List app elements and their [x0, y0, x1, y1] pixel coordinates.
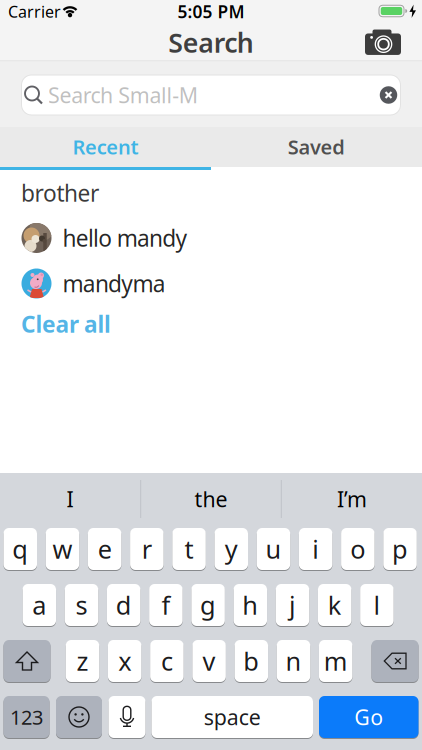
staticText: e: [98, 532, 112, 566]
button[interactable]: d: [107, 583, 140, 627]
button[interactable]: u: [257, 527, 290, 571]
button[interactable]: mandyma: [21, 265, 401, 301]
button[interactable]: k: [318, 583, 351, 627]
staticText: space: [204, 703, 261, 731]
staticText: u: [265, 532, 281, 566]
button[interactable]: [380, 86, 397, 104]
button[interactable]: hello mandy: [21, 220, 401, 256]
button[interactable]: y: [214, 527, 248, 571]
button[interactable]: the: [146, 477, 276, 521]
button[interactable]: space: [151, 695, 313, 739]
button[interactable]: Recent: [0, 126, 211, 167]
staticText: j: [289, 588, 296, 622]
staticText: Saved: [288, 133, 345, 160]
staticText: m: [324, 644, 348, 678]
button[interactable]: f: [149, 583, 183, 627]
button[interactable]: Go: [319, 695, 418, 739]
staticText: s: [75, 588, 87, 622]
button[interactable]: a: [22, 583, 56, 627]
button[interactable]: Search Small-M: [21, 75, 400, 115]
staticText: d: [116, 588, 132, 622]
staticText: o: [350, 532, 365, 566]
staticText: n: [285, 644, 301, 678]
button[interactable]: p: [383, 527, 417, 571]
staticText: g: [200, 588, 216, 622]
staticText: r: [142, 532, 152, 566]
staticText: z: [76, 644, 88, 678]
staticText: q: [12, 532, 28, 566]
button[interactable]: [108, 695, 145, 739]
staticText: c: [161, 644, 173, 678]
staticText: t: [185, 532, 194, 566]
staticText: Recent: [72, 133, 138, 160]
button[interactable]: c: [150, 639, 184, 683]
staticText: I’m: [337, 485, 367, 513]
button[interactable]: [362, 25, 406, 59]
button[interactable]: e: [88, 527, 121, 571]
staticText: v: [203, 644, 216, 678]
button[interactable]: b: [235, 639, 268, 683]
staticText: b: [243, 644, 259, 678]
button[interactable]: q: [3, 527, 37, 571]
staticText: I: [66, 485, 73, 513]
staticText: i: [312, 532, 319, 566]
button[interactable]: x: [108, 639, 141, 683]
button[interactable]: t: [172, 527, 206, 571]
staticText: k: [328, 588, 342, 622]
button[interactable]: l: [360, 583, 394, 627]
staticText: mandyma: [62, 268, 166, 298]
button[interactable]: i: [299, 527, 332, 571]
staticText: Clear all: [21, 309, 111, 339]
button[interactable]: 123: [3, 695, 49, 739]
staticText: l: [373, 588, 380, 622]
button[interactable]: n: [277, 639, 310, 683]
staticText: Search: [168, 25, 254, 60]
staticText: p: [392, 532, 408, 566]
button[interactable]: Saved: [211, 126, 422, 167]
button[interactable]: [371, 639, 418, 683]
staticText: Go: [354, 703, 383, 731]
button[interactable]: w: [46, 527, 79, 571]
staticText: brother: [21, 178, 99, 208]
button[interactable]: v: [192, 639, 226, 683]
button[interactable]: Clear all: [21, 311, 141, 337]
button[interactable]: j: [276, 583, 309, 627]
button[interactable]: h: [234, 583, 267, 627]
button[interactable]: [56, 695, 102, 739]
button[interactable]: o: [341, 527, 375, 571]
button[interactable]: I: [5, 477, 135, 521]
button[interactable]: I’m: [287, 477, 417, 521]
staticText: 123: [10, 704, 43, 730]
staticText: y: [225, 532, 238, 566]
staticText: the: [194, 485, 227, 513]
staticText: Search Small-M: [48, 81, 198, 109]
staticText: w: [52, 532, 72, 566]
staticText: 5:05 PM: [177, 0, 244, 23]
button[interactable]: r: [130, 527, 164, 571]
button[interactable]: [3, 639, 50, 683]
button[interactable]: m: [319, 639, 352, 683]
button[interactable]: s: [65, 583, 98, 627]
staticText: x: [118, 644, 131, 678]
staticText: Carrier: [8, 1, 61, 22]
staticText: f: [161, 588, 170, 622]
button[interactable]: z: [66, 639, 99, 683]
staticText: h: [242, 588, 258, 622]
staticText: a: [32, 588, 46, 622]
button[interactable]: g: [191, 583, 225, 627]
staticText: hello mandy: [62, 223, 187, 253]
